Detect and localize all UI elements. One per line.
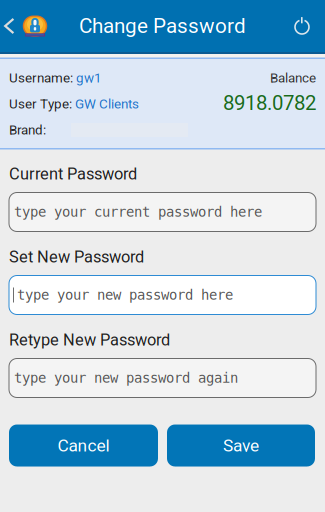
staticText: gw1 [76, 70, 102, 86]
staticText: User Type: [9, 96, 75, 112]
staticText: Cancel [57, 435, 109, 456]
button[interactable]: Save [167, 424, 315, 466]
button[interactable]: Log out [279, 0, 325, 52]
staticText: Balance [270, 70, 316, 86]
staticText: Username: [9, 70, 76, 86]
staticText: GW Clients [75, 96, 139, 112]
staticText: Retype New Password [9, 330, 170, 350]
staticText: Current Password [9, 164, 137, 184]
staticText: Set New Password [9, 247, 144, 267]
staticText: Brand: [9, 122, 46, 138]
staticText: type your current password here [14, 204, 262, 220]
staticText: type your new password here [17, 287, 233, 303]
button[interactable]: Cancel [9, 424, 158, 466]
staticText: 8918.0782 [223, 91, 316, 115]
button[interactable]: Back [0, 0, 56, 52]
staticText: type your new password again [14, 370, 238, 386]
staticText: Change Password [79, 14, 246, 38]
staticText: Save [223, 435, 259, 456]
